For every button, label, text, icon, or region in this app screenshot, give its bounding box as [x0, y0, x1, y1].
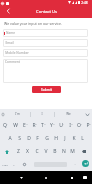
staticText: K — [72, 135, 76, 142]
button[interactable]: Home — [42, 171, 50, 184]
staticText: Mobile Number — [5, 51, 29, 55]
staticText: Submit — [41, 88, 52, 92]
staticText: We value your input on our service. — [4, 21, 62, 26]
button[interactable]: J — [60, 132, 69, 145]
button[interactable]: Y — [47, 119, 56, 132]
button[interactable]: N — [59, 145, 68, 158]
staticText: T — [41, 122, 44, 129]
staticText: 3 — [26, 122, 28, 125]
staticText: . — [74, 161, 76, 166]
staticText: L — [81, 135, 84, 142]
staticText: 0 — [89, 122, 91, 125]
staticText: 7 — [62, 122, 64, 125]
button[interactable]: R — [29, 119, 38, 132]
staticText: Q — [3, 122, 7, 129]
staticText: V — [44, 148, 48, 155]
staticText: B — [53, 148, 57, 155]
button[interactable]: V — [41, 145, 50, 158]
staticText: Z — [17, 148, 20, 155]
button[interactable]: Back — [4, 7, 12, 15]
button[interactable]: ?123 — [0, 158, 9, 171]
button[interactable]: Shift — [0, 145, 14, 158]
button[interactable]: Name — [3, 29, 88, 37]
button[interactable]: B — [50, 145, 59, 158]
staticText: I — [41, 112, 43, 116]
staticText: We — [66, 112, 71, 116]
button[interactable]: More suggestions — [85, 112, 90, 117]
staticText: J — [64, 135, 66, 142]
staticText: E — [23, 122, 26, 129]
button[interactable]: U — [56, 119, 65, 132]
staticText: I'm — [15, 112, 20, 116]
staticText: W — [13, 122, 18, 129]
button[interactable]: W — [10, 119, 20, 132]
staticText: R — [32, 122, 36, 129]
button[interactable]: H — [51, 132, 60, 145]
button[interactable]: C — [32, 145, 41, 158]
staticText: Contact Us — [36, 9, 57, 15]
button[interactable]: F — [33, 132, 42, 145]
button[interactable]: K — [69, 132, 78, 145]
button[interactable]: Switch keyboard — [81, 171, 89, 184]
staticText: U — [59, 122, 63, 129]
button[interactable]: Mobile Number — [3, 49, 88, 57]
button[interactable]: Email — [3, 39, 88, 47]
button[interactable]: L — [78, 132, 87, 145]
staticText: F — [36, 135, 39, 142]
button[interactable]: P — [83, 119, 92, 132]
staticText: X — [26, 148, 29, 155]
staticText: 9 — [80, 122, 82, 125]
button[interactable]: D — [24, 132, 33, 145]
staticText: 5 — [44, 122, 46, 125]
button[interactable]: I — [30, 109, 54, 119]
button[interactable]: Google — [0, 112, 5, 117]
button[interactable]: I'm — [5, 109, 30, 119]
staticText: P — [86, 122, 90, 129]
staticText: 8 — [71, 122, 73, 125]
staticText: 2:48 — [81, 1, 88, 5]
button[interactable]: O — [74, 119, 83, 132]
staticText: D — [27, 135, 31, 142]
button[interactable]: Comment — [3, 59, 88, 83]
button[interactable]: Q — [0, 119, 10, 132]
staticText: I — [69, 122, 71, 129]
button[interactable]: Hide keyboard — [17, 171, 25, 184]
button[interactable]: Enter — [82, 160, 89, 167]
staticText: M — [70, 148, 75, 155]
button[interactable]: Backspace — [77, 145, 91, 158]
staticText: 6 — [53, 122, 55, 125]
staticText: S — [18, 135, 21, 142]
staticText: O — [77, 122, 81, 129]
button[interactable]: G — [42, 132, 51, 145]
staticText: 2 — [16, 122, 18, 125]
staticText: H — [54, 135, 58, 142]
staticText: N — [62, 148, 66, 155]
button[interactable]: Submit — [32, 86, 61, 93]
staticText: 4 — [35, 122, 37, 125]
button[interactable]: Emoji — [20, 158, 29, 171]
button[interactable]: A — [5, 132, 15, 145]
button[interactable]: S — [15, 132, 24, 145]
button[interactable]: M — [68, 145, 77, 158]
button[interactable]: I — [65, 119, 74, 132]
staticText: , — [13, 161, 15, 166]
button[interactable]: T — [38, 119, 47, 132]
staticText: Name — [6, 31, 15, 35]
staticText: Email — [5, 41, 14, 45]
staticText: G — [45, 135, 49, 142]
staticText: Comment — [5, 60, 20, 64]
staticText: C — [35, 148, 39, 155]
staticText: Y — [50, 122, 53, 129]
staticText: ?123 — [2, 163, 8, 166]
button[interactable]: E — [20, 119, 29, 132]
button[interactable]: Z — [14, 145, 23, 158]
staticText: A — [8, 135, 12, 142]
button[interactable]: Recents — [68, 171, 76, 184]
button[interactable]: We — [54, 109, 82, 119]
staticText: 1 — [6, 122, 8, 125]
button[interactable]: X — [23, 145, 32, 158]
